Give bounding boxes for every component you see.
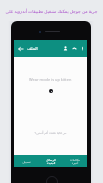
button[interactable]: تسجيل — [14, 155, 39, 167]
button[interactable]: Contact — [61, 44, 70, 53]
staticText: الرسائل الجديدة — [46, 158, 56, 164]
button[interactable]: الرسائل الجديدة — [39, 155, 63, 167]
staticText: مكالمات أخيرة — [70, 158, 80, 164]
button[interactable]: Back — [16, 44, 25, 53]
staticText: مر غالبا نصت ألم أتمنى؟ — [14, 131, 87, 135]
staticText: جربة من جوجل يمكنك تشغيل تطبيقات أندرويد… — [0, 8, 103, 14]
button[interactable]: More options — [79, 45, 86, 52]
staticText: تسجيل — [22, 160, 31, 163]
button[interactable]: مكالمات أخيرة — [63, 155, 87, 167]
staticText: Wear mode is up kitten — [29, 77, 72, 82]
button[interactable]: Call — [70, 44, 79, 53]
staticText: الملف — [27, 46, 38, 51]
